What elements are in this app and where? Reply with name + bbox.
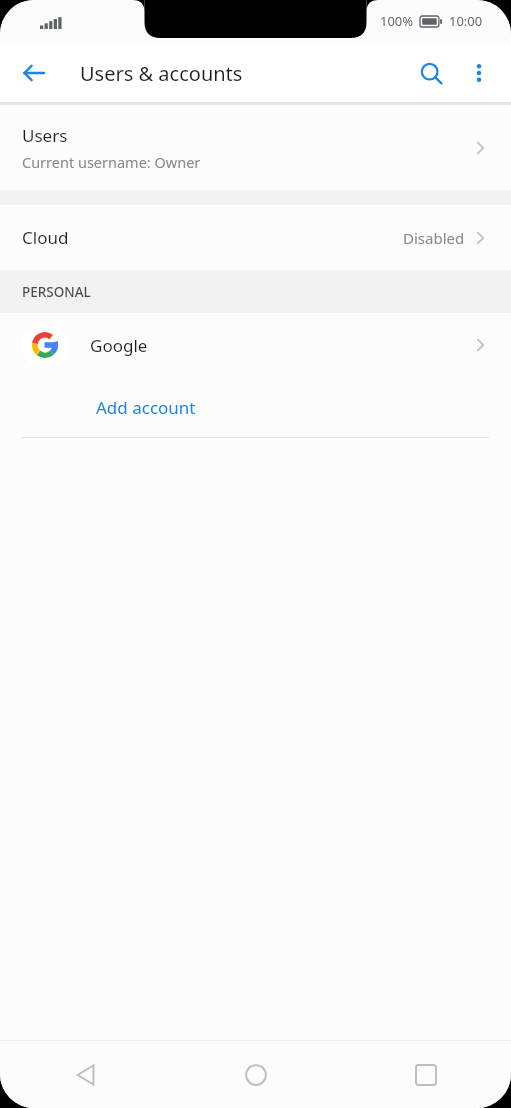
staticText: 10:00	[449, 12, 483, 30]
button[interactable]: More options	[455, 49, 503, 97]
staticText: Users	[22, 124, 68, 147]
button[interactable]: Google	[0, 313, 511, 377]
staticText: Google	[90, 334, 148, 357]
staticText: 100%	[380, 12, 414, 30]
button[interactable]: Users	[0, 105, 511, 190]
staticText: Disabled	[403, 228, 465, 248]
button[interactable]: Search	[407, 49, 455, 97]
button[interactable]: Cloud	[0, 205, 511, 270]
staticText: Cloud	[22, 226, 69, 249]
staticText: Users & accounts	[80, 60, 243, 87]
staticText: Current username: Owner	[22, 152, 201, 172]
staticText: Add account	[96, 396, 196, 419]
button[interactable]: Recent apps	[341, 1041, 511, 1108]
button[interactable]: Add account	[0, 377, 511, 437]
button[interactable]: Back	[10, 49, 58, 97]
staticText: PERSONAL	[22, 283, 91, 301]
button[interactable]: Home	[171, 1041, 341, 1108]
button[interactable]: Back	[0, 1041, 171, 1108]
